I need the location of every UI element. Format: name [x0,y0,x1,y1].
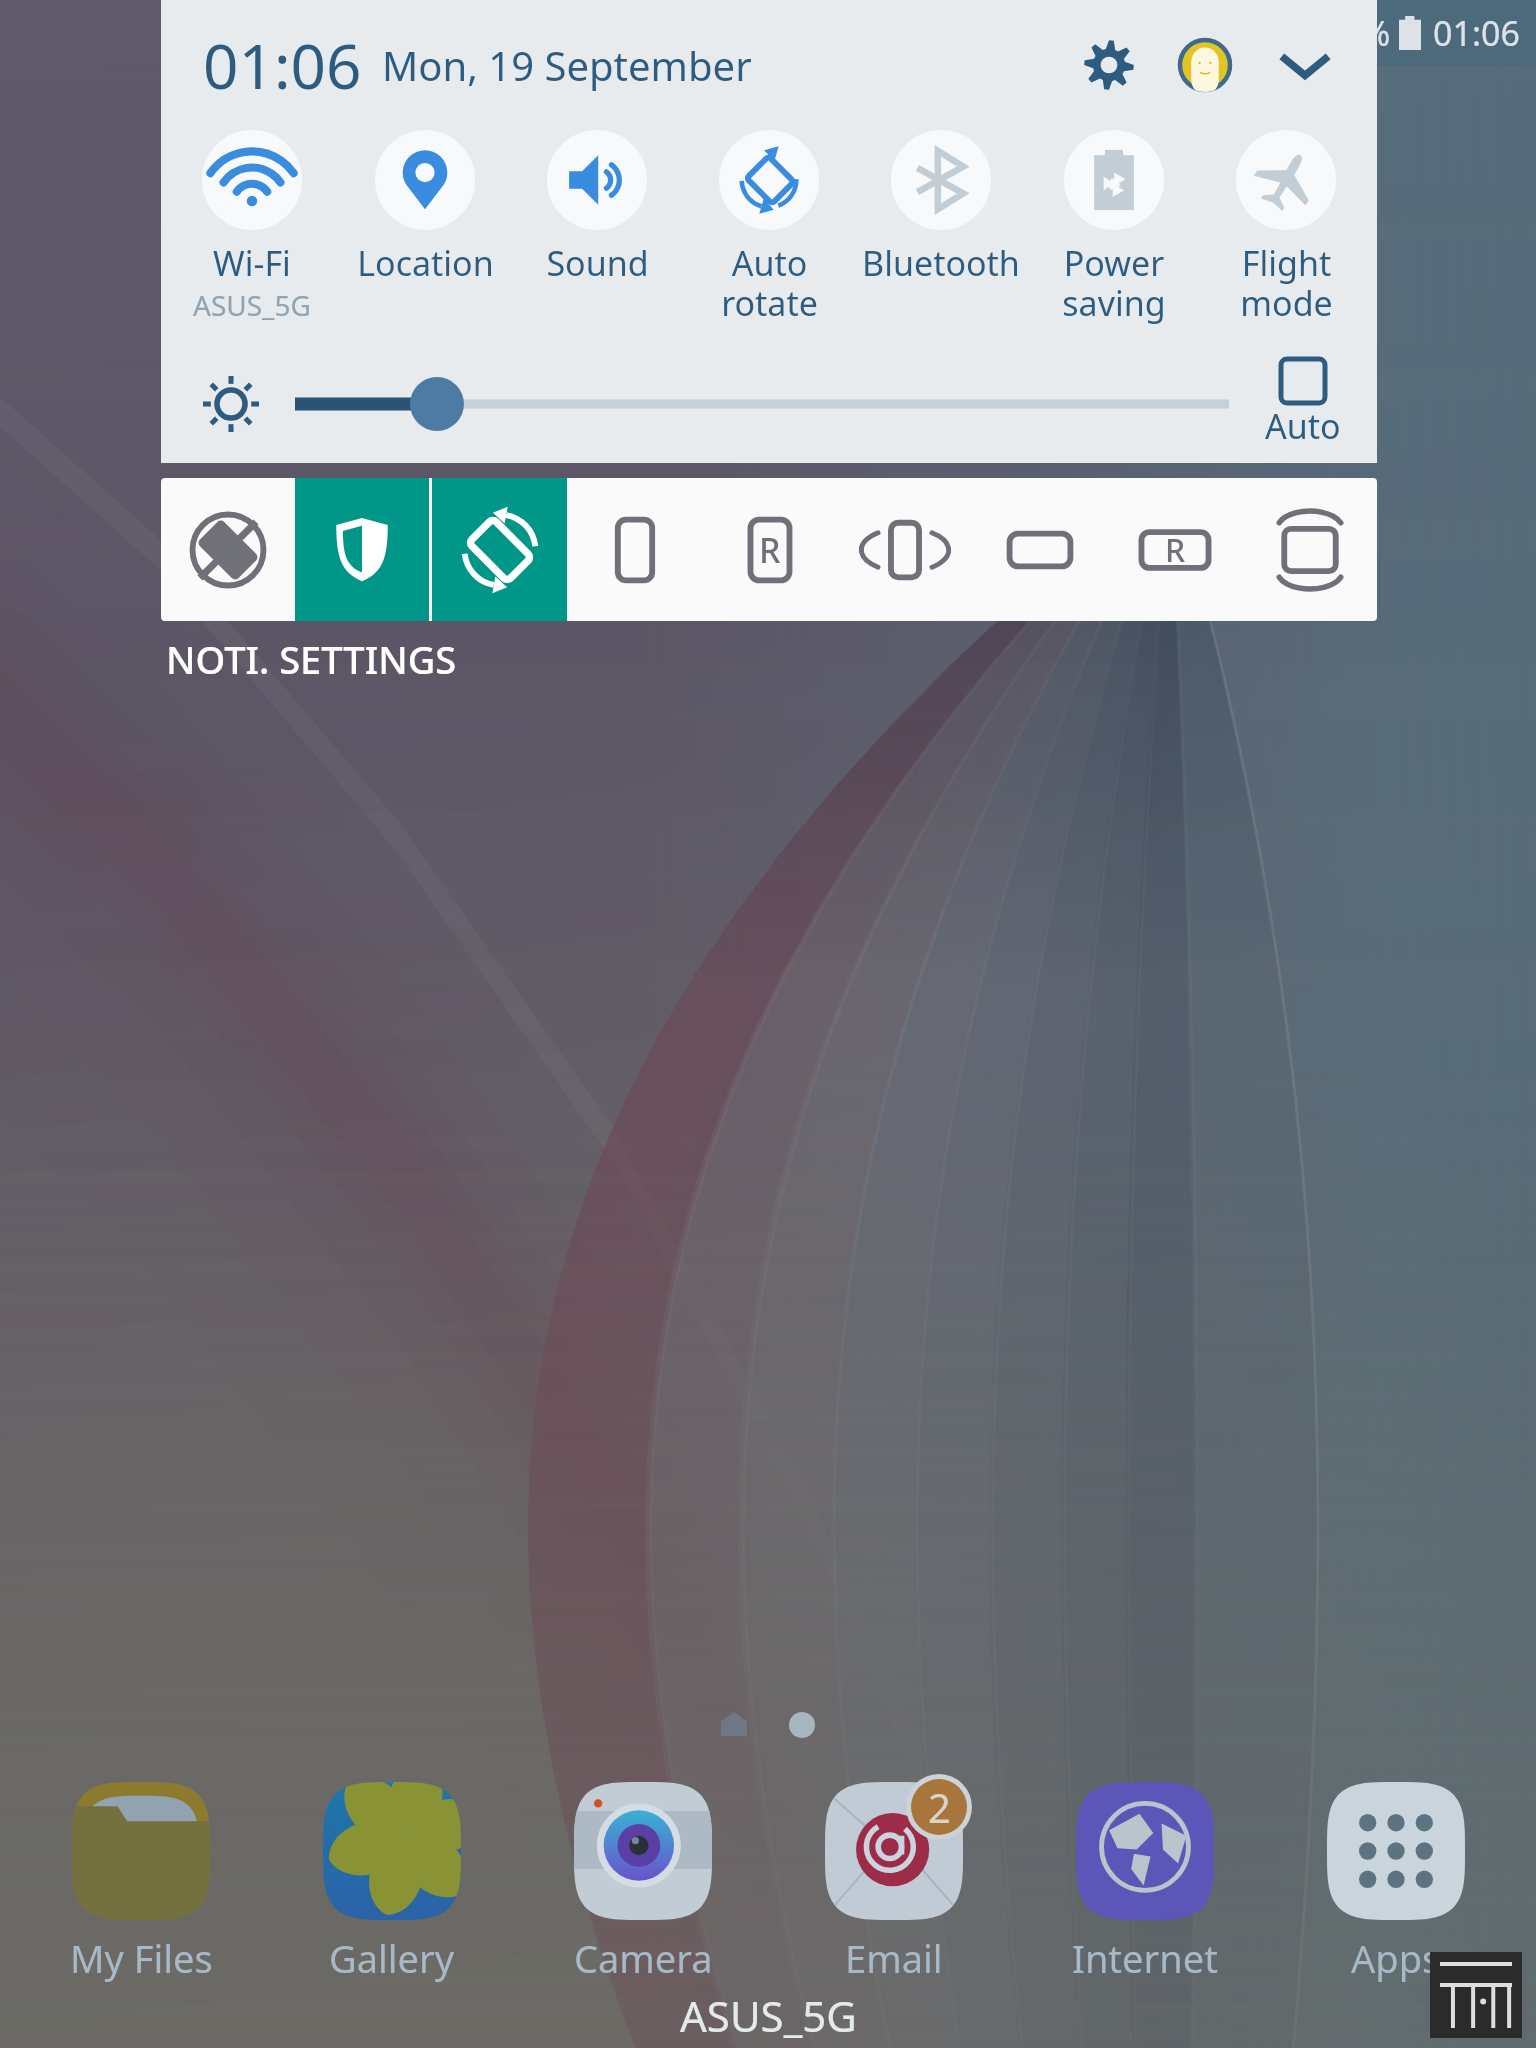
staticText: Email [845,1932,943,1984]
staticText: 86% [1323,10,1391,56]
staticText: NOTI. SETTINGS [166,633,457,685]
staticText: Location [357,240,494,286]
button[interactable]: Auto [1265,359,1341,449]
staticText: ASUS_5G [680,1987,857,2044]
staticText: Gallery [329,1932,455,1984]
button[interactable]: User profile [1165,25,1245,105]
staticText: Camera [574,1932,713,1984]
staticText: 01:06 [203,23,362,107]
staticText: ASUS_5G [193,286,311,324]
staticText: Mon, 19 September [382,38,752,92]
staticText: Apps [1351,1932,1441,1984]
button[interactable]: Auto rotate [684,130,854,326]
staticText: Flight mode [1240,240,1333,326]
button[interactable]: Secure mode [295,478,429,621]
button[interactable]: Internet [1020,1776,1270,2006]
staticText: Auto rotate [721,240,818,326]
button[interactable]: Rotation lock [161,478,295,621]
button[interactable]: Vibrate [837,478,972,621]
staticText: R [759,527,781,573]
button[interactable]: Location [340,130,510,286]
button[interactable]: Bluetooth [856,130,1026,286]
button[interactable]: Gallery [267,1776,517,2006]
staticText: My Files [70,1932,213,1984]
staticText: Power saving [1062,240,1166,326]
staticText: Wi-Fi [213,240,291,286]
button[interactable]: Apps [1271,1776,1521,2006]
button[interactable]: Auto rotate [432,478,567,621]
staticText: 01:06 [1433,10,1520,56]
button[interactable]: Flight mode [1201,130,1371,326]
button[interactable]: Smart stay [1242,478,1377,621]
button[interactable]: Landscape [972,478,1107,621]
button[interactable]: Sound [512,130,682,286]
button[interactable]: Wi-Fi [167,130,337,324]
button[interactable]: My Files [16,1776,266,2006]
staticText: Internet [1072,1932,1218,1984]
button[interactable]: Portrait [567,478,702,621]
button[interactable]: NOTI. SETTINGS [158,625,465,693]
button[interactable]: Collapse [1265,25,1345,105]
button[interactable]: Settings [1069,25,1149,105]
button[interactable]: Brightness [295,374,1229,434]
staticText: 2 [928,1780,951,1834]
button[interactable]: 2 [769,1776,1019,2006]
button[interactable]: Portrait reverse [702,478,837,621]
button[interactable]: Landscape reverse [1107,478,1242,621]
staticText: Sound [546,240,649,286]
button[interactable]: Power saving [1029,130,1199,326]
staticText: Bluetooth [862,240,1020,286]
button[interactable]: Camera [518,1776,768,2006]
staticText: Auto [1265,403,1341,449]
staticText: R [1165,528,1186,572]
